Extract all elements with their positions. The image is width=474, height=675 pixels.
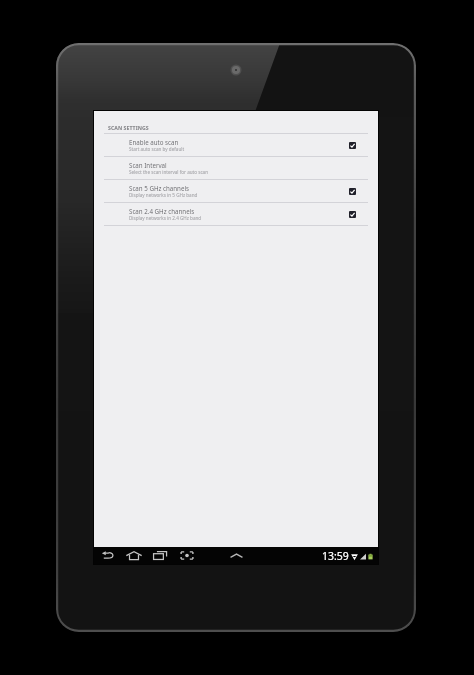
button[interactable]: Scan Interval	[94, 157, 378, 179]
staticText: Enable auto scan	[129, 138, 179, 146]
button[interactable]: Enable auto scan	[94, 134, 378, 156]
button[interactable]: Back	[101, 547, 115, 564]
staticText: Start auto scan by default	[129, 146, 185, 152]
staticText: Scan 5 GHz channels	[129, 184, 189, 192]
staticText: Display networks in 5 GHz band	[129, 192, 198, 198]
button[interactable]: Scan 2.4 GHz channels	[94, 203, 378, 225]
staticText: 13:59	[322, 549, 349, 563]
staticText: SCAN SETTINGS	[108, 124, 149, 131]
button[interactable]: Screenshot	[180, 547, 194, 564]
staticText: Scan Interval	[129, 161, 167, 169]
other: Toggle Scan 2.4 GHz channels	[349, 211, 356, 218]
staticText: Scan 2.4 GHz channels	[129, 207, 195, 215]
button[interactable]: Scan 5 GHz channels	[94, 180, 378, 202]
button[interactable]: Show notifications	[230, 547, 243, 564]
staticText: Display networks in 2.4 GHz band	[129, 215, 202, 221]
button[interactable]: Home	[126, 547, 142, 564]
other: Toggle Scan 5 GHz channels	[349, 188, 356, 195]
staticText: Select the scan interval for auto scan	[129, 169, 209, 175]
other: Toggle Enable auto scan	[349, 142, 356, 149]
button[interactable]: Recent apps	[153, 547, 167, 564]
